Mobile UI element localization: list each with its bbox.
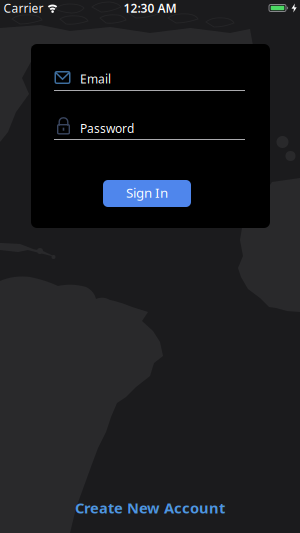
staticText: Password — [80, 120, 134, 136]
staticText: Create New Account — [75, 498, 225, 517]
staticText: Email — [80, 71, 111, 87]
staticText: Carrier — [3, 0, 43, 16]
button[interactable]: Sign In — [103, 180, 191, 207]
button[interactable]: Password — [31, 100, 270, 150]
button[interactable]: Create New Account — [75, 498, 225, 517]
staticText: Sign In — [126, 184, 168, 201]
staticText: 12:30 AM — [123, 0, 176, 16]
button[interactable]: Email — [31, 44, 270, 100]
